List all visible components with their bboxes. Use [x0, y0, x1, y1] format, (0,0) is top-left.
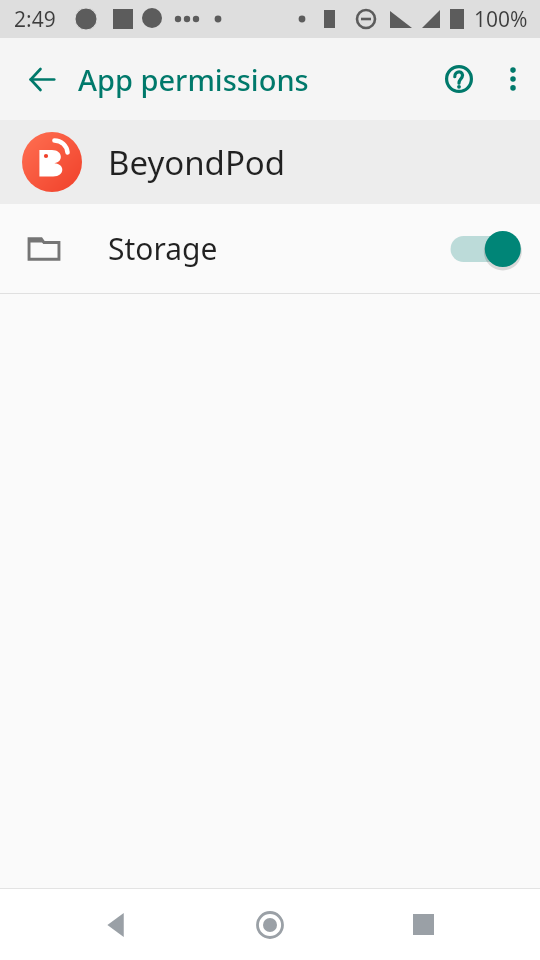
staticText: 2:49 — [14, 5, 56, 34]
staticText: Storage — [108, 228, 218, 269]
button[interactable]: Back — [14, 51, 70, 107]
button[interactable]: Storage permission toggle — [446, 224, 522, 274]
button[interactable]: Storage — [0, 204, 540, 293]
staticText: BeyondPod — [108, 140, 286, 185]
staticText: 100% — [474, 5, 528, 34]
staticText: App permissions — [78, 60, 309, 99]
button[interactable]: Home — [234, 889, 306, 960]
button[interactable]: Back — [81, 889, 153, 960]
button[interactable]: Recent apps — [387, 889, 459, 960]
button[interactable]: BeyondPod — [0, 120, 540, 204]
button[interactable]: Help — [432, 52, 486, 106]
button[interactable]: More options — [486, 52, 540, 106]
